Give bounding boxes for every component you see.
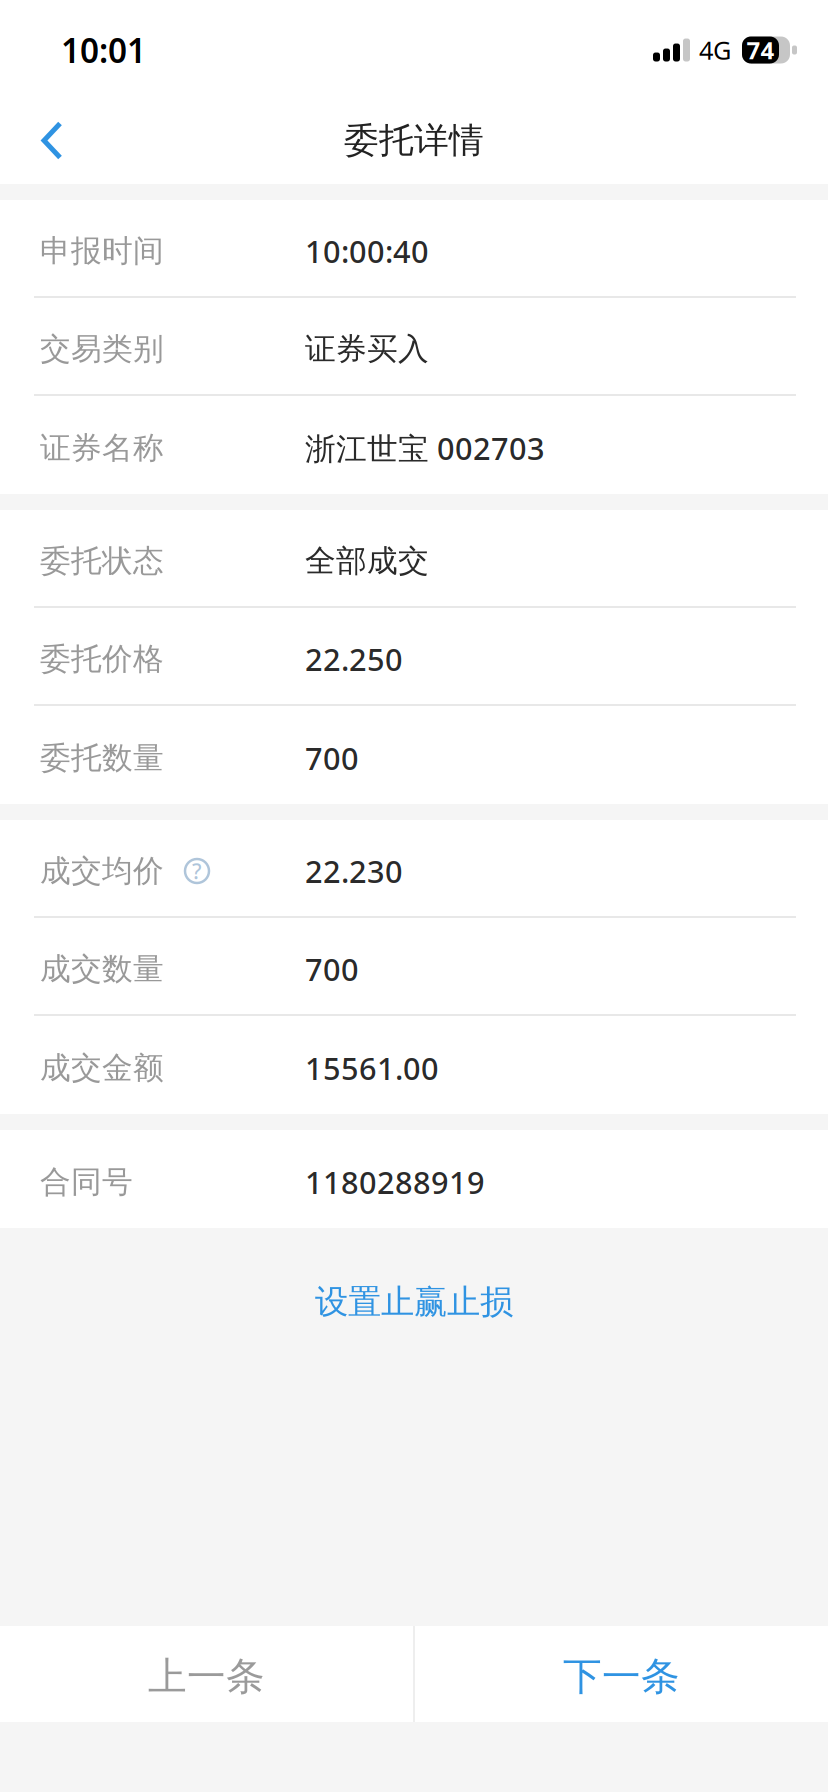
staticText: 浙江世宝 002703 xyxy=(305,428,545,468)
staticText: 证券名称 xyxy=(40,429,164,467)
staticText: 700 xyxy=(305,738,359,778)
staticText: 委托价格 xyxy=(40,640,164,678)
staticText: 22.230 xyxy=(305,851,403,891)
staticText: 1180288919 xyxy=(305,1162,485,1202)
button[interactable]: 下一条 xyxy=(415,1626,828,1722)
staticText: ? xyxy=(192,857,202,885)
staticText: 委托数量 xyxy=(40,739,164,777)
staticText: 设置止赢止损 xyxy=(315,1281,513,1322)
staticText: 74 xyxy=(746,34,774,66)
button[interactable]: 返回 xyxy=(0,88,93,184)
staticText: 10:01 xyxy=(61,28,146,72)
staticText: 700 xyxy=(305,949,359,989)
staticText: 4G xyxy=(699,33,731,67)
staticText: 委托详情 xyxy=(344,119,484,162)
button[interactable]: 上一条 xyxy=(0,1626,413,1722)
staticText: 交易类别 xyxy=(40,330,164,368)
staticText: 委托状态 xyxy=(40,542,164,580)
staticText: 10:00:40 xyxy=(305,231,429,271)
staticText: 证券买入 xyxy=(305,330,429,368)
staticText: 成交金额 xyxy=(40,1049,164,1087)
staticText: 下一条 xyxy=(563,1653,680,1700)
staticText: 成交均价 xyxy=(40,852,164,890)
staticText: 合同号 xyxy=(40,1163,133,1201)
staticText: 15561.00 xyxy=(305,1048,439,1088)
staticText: 全部成交 xyxy=(305,542,429,580)
staticText: 申报时间 xyxy=(40,232,164,270)
staticText: 上一条 xyxy=(148,1653,265,1700)
staticText: 22.250 xyxy=(305,639,403,679)
staticText: 成交数量 xyxy=(40,950,164,988)
button[interactable]: 设置止赢止损 xyxy=(0,1228,828,1376)
